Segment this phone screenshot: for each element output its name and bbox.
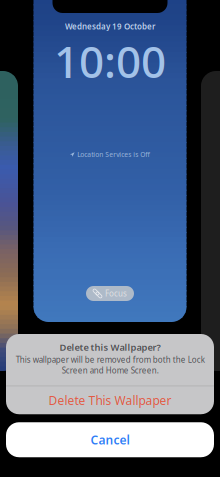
staticText: Wednesday 19 October (65, 21, 155, 32)
button[interactable]: Delete This Wallpaper (6, 386, 214, 414)
staticText: This wallpaper will be removed from both… (15, 354, 204, 376)
staticText: Delete This Wallpaper (48, 392, 171, 408)
staticText: 10:00 (54, 32, 166, 90)
staticText: Cancel (90, 432, 129, 448)
staticText: Location Services is Off (77, 150, 150, 159)
button[interactable]: Cancel (6, 422, 214, 457)
staticText: Focus (105, 288, 127, 299)
staticText: Delete this Wallpaper? (59, 341, 160, 353)
